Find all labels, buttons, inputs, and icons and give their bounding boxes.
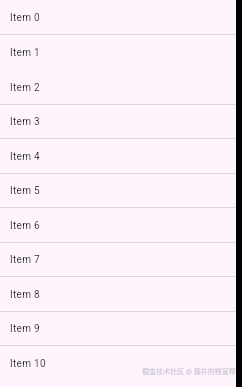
staticText: Item 0 [10, 12, 40, 24]
staticText: Item 10 [10, 358, 46, 370]
button[interactable]: Item 5 [0, 174, 242, 208]
button[interactable]: Item 2 [0, 70, 242, 105]
staticText: Item 6 [10, 220, 40, 232]
staticText: Item 1 [10, 47, 40, 59]
button[interactable]: Item 10 [0, 346, 242, 381]
staticText: Item 5 [10, 185, 40, 197]
staticText: Item 3 [10, 116, 40, 128]
staticText: Item 7 [10, 254, 40, 266]
button[interactable]: Item 4 [0, 139, 242, 174]
staticText: Item 4 [10, 151, 40, 163]
staticText: 掘金技术社区 @ 藤井的狸宣帮 [142, 366, 236, 376]
button[interactable]: Item 9 [0, 312, 242, 346]
button[interactable]: Item 7 [0, 243, 242, 277]
staticText: Item 2 [10, 82, 40, 94]
staticText: Item 8 [10, 289, 40, 301]
button[interactable]: Item 1 [0, 35, 242, 70]
button[interactable]: Item 3 [0, 105, 242, 139]
button[interactable]: Item 0 [0, 1, 242, 35]
staticText: Item 9 [10, 323, 40, 335]
button[interactable]: Item 6 [0, 208, 242, 243]
button[interactable]: Item 8 [0, 277, 242, 312]
